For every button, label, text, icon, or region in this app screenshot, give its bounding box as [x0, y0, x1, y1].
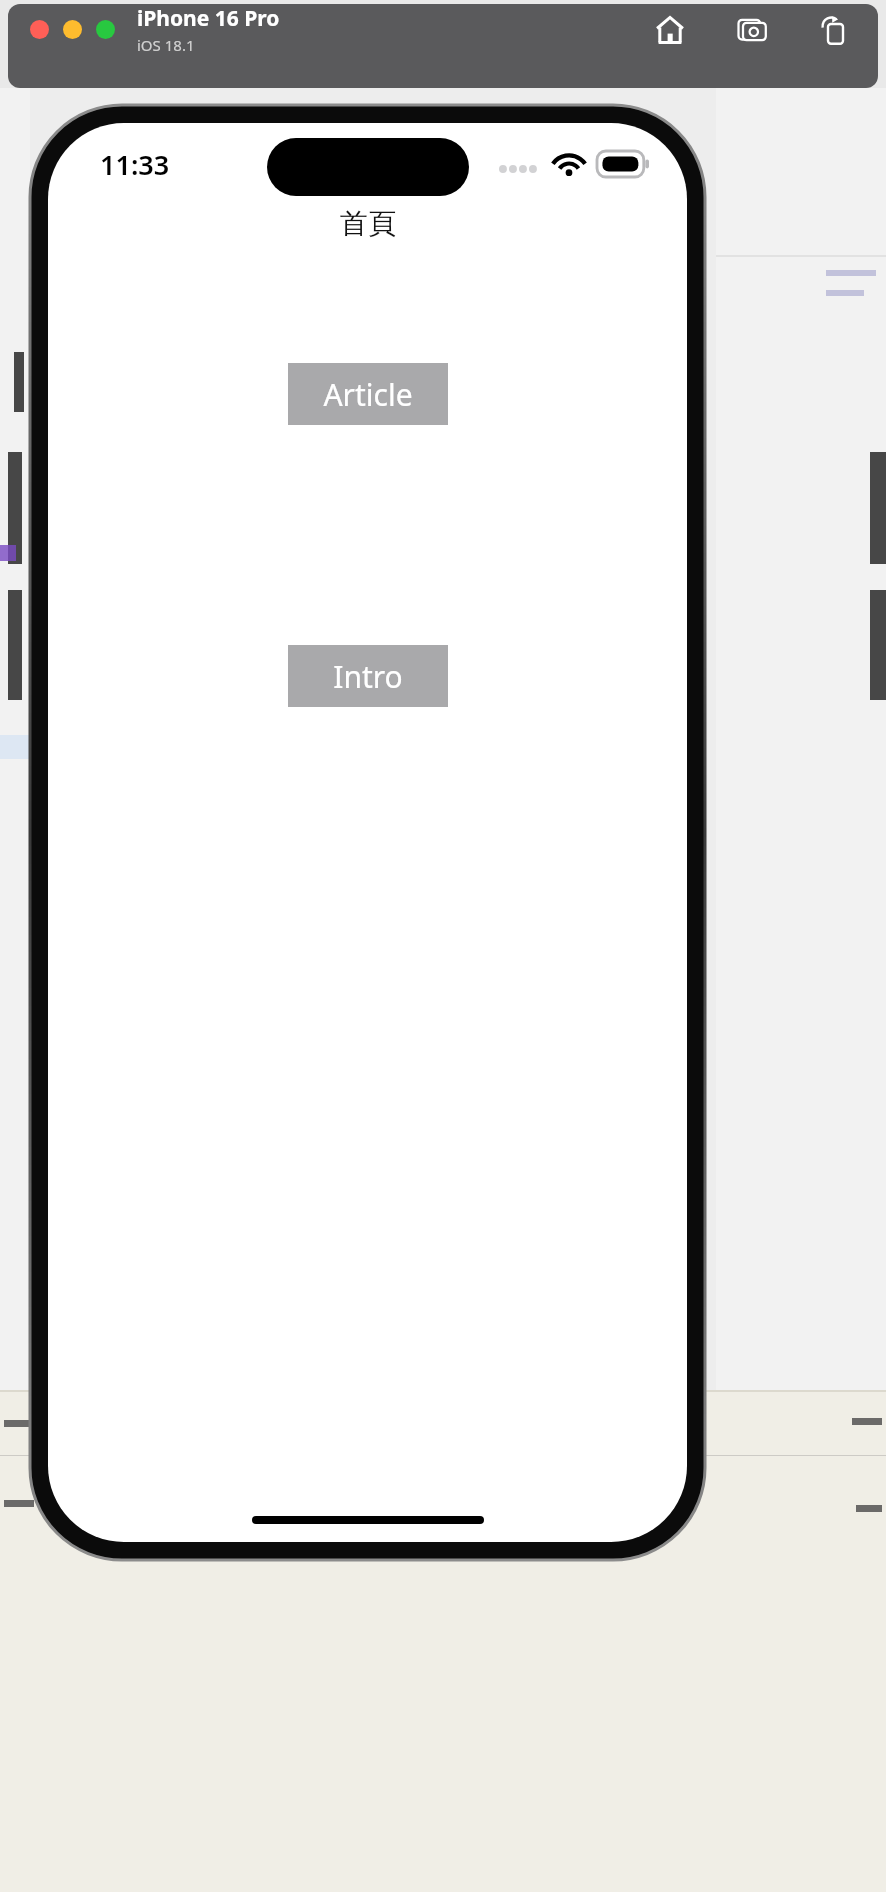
- button[interactable]: Screenshot: [730, 8, 774, 52]
- button[interactable]: Intro: [288, 645, 448, 707]
- staticText: 11:33: [100, 146, 170, 183]
- staticText: 首頁: [340, 206, 396, 241]
- staticText: iOS 18.1: [137, 35, 195, 55]
- button[interactable]: Rotate: [812, 8, 856, 52]
- button[interactable]: Home: [648, 8, 692, 52]
- button[interactable]: Article: [288, 363, 448, 425]
- button[interactable]: Minimize: [63, 20, 82, 39]
- staticText: Intro: [333, 656, 403, 697]
- staticText: Article: [323, 374, 413, 415]
- staticText: iPhone 16 Pro: [137, 4, 280, 33]
- button[interactable]: Close: [30, 20, 49, 39]
- button[interactable]: Zoom: [96, 20, 115, 39]
